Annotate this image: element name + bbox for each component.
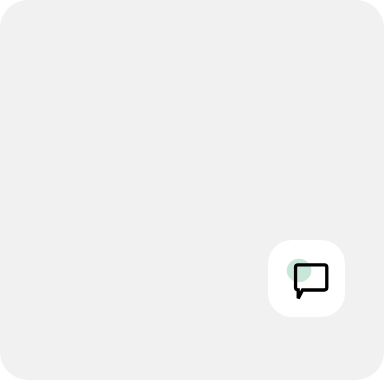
button[interactable]: Messages [268,240,345,317]
